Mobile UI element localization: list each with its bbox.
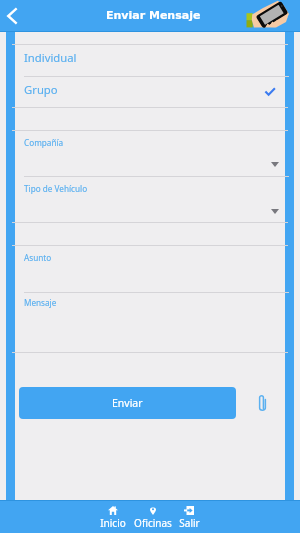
button[interactable]: Adjuntar archivo bbox=[248, 389, 276, 417]
button[interactable]: Individual bbox=[15, 44, 285, 76]
button[interactable]: Inicio bbox=[96, 501, 130, 533]
staticText: Oficinas bbox=[134, 516, 172, 530]
staticText: Compañía bbox=[24, 137, 64, 148]
staticText: Individual bbox=[24, 50, 77, 65]
button[interactable]: Enviar bbox=[19, 387, 236, 419]
staticText: Tipo de Vehículo bbox=[24, 183, 88, 194]
staticText: Inicio bbox=[100, 516, 126, 530]
button[interactable]: Salir bbox=[174, 501, 204, 533]
staticText: Salir bbox=[179, 516, 200, 530]
button[interactable]: Oficinas bbox=[130, 501, 175, 533]
staticText: Asunto bbox=[24, 252, 52, 263]
staticText: Grupo bbox=[24, 82, 58, 97]
staticText: Enviar bbox=[112, 396, 143, 410]
staticText: Mensaje bbox=[24, 297, 57, 308]
button[interactable]: Mensaje bbox=[15, 292, 285, 352]
button[interactable]: Tipo de Vehículo bbox=[15, 176, 285, 223]
button[interactable]: Asunto bbox=[15, 245, 285, 293]
button[interactable]: Atrás bbox=[0, 0, 24, 31]
button[interactable]: Compañía bbox=[15, 130, 285, 176]
button[interactable]: Grupo bbox=[15, 76, 285, 108]
staticText: Enviar Mensaje bbox=[106, 9, 201, 22]
